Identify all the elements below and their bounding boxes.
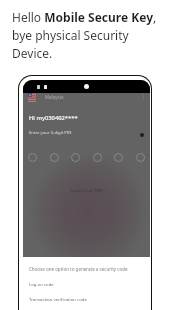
staticText: Enter your 6-digit PIN xyxy=(29,130,72,136)
staticText: Malaysia xyxy=(45,94,64,100)
staticText: Choose one option to generate a security… xyxy=(29,266,128,272)
staticText: Hello Mobile Secure Key, bye physical Se… xyxy=(12,9,160,62)
staticText: Hi my030402**** xyxy=(29,114,78,122)
button[interactable]: Forgot your PIN? xyxy=(70,188,104,194)
button[interactable]: Help xyxy=(140,133,144,137)
button[interactable]: Log on code xyxy=(23,281,150,287)
button[interactable]: Transaction verification code xyxy=(23,296,150,302)
button[interactable]: More options xyxy=(141,93,146,100)
